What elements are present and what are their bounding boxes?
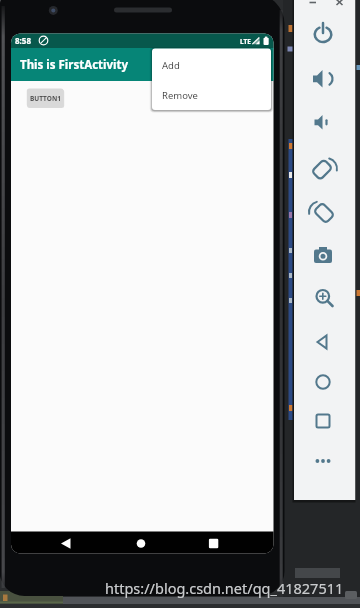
button[interactable]	[309, 407, 337, 435]
button[interactable]	[309, 284, 337, 312]
button[interactable]	[52, 534, 80, 552]
button[interactable]	[333, 0, 346, 9]
staticText: 8:58	[15, 35, 31, 46]
button[interactable]	[128, 534, 156, 552]
button[interactable]	[309, 154, 337, 182]
button[interactable]	[309, 368, 337, 396]
button[interactable]: Add	[152, 49, 271, 80]
button[interactable]	[306, 0, 319, 9]
button[interactable]	[309, 20, 337, 48]
button[interactable]	[309, 328, 337, 356]
button[interactable]	[309, 197, 337, 225]
staticText: Remove	[162, 89, 198, 102]
button[interactable]	[309, 65, 337, 93]
button[interactable]	[309, 242, 337, 270]
button[interactable]	[309, 447, 337, 475]
staticText: This is FirstActivity	[20, 57, 129, 73]
button[interactable]	[200, 534, 228, 552]
staticText: LTE	[240, 37, 251, 46]
staticText: https://blog.csdn.net/qq_41827511	[105, 578, 344, 598]
staticText: BUTTON1	[30, 94, 61, 103]
button[interactable]: Remove	[152, 79, 271, 110]
button[interactable]: BUTTON1	[27, 89, 64, 108]
button[interactable]	[309, 108, 337, 136]
staticText: Add	[162, 59, 180, 72]
